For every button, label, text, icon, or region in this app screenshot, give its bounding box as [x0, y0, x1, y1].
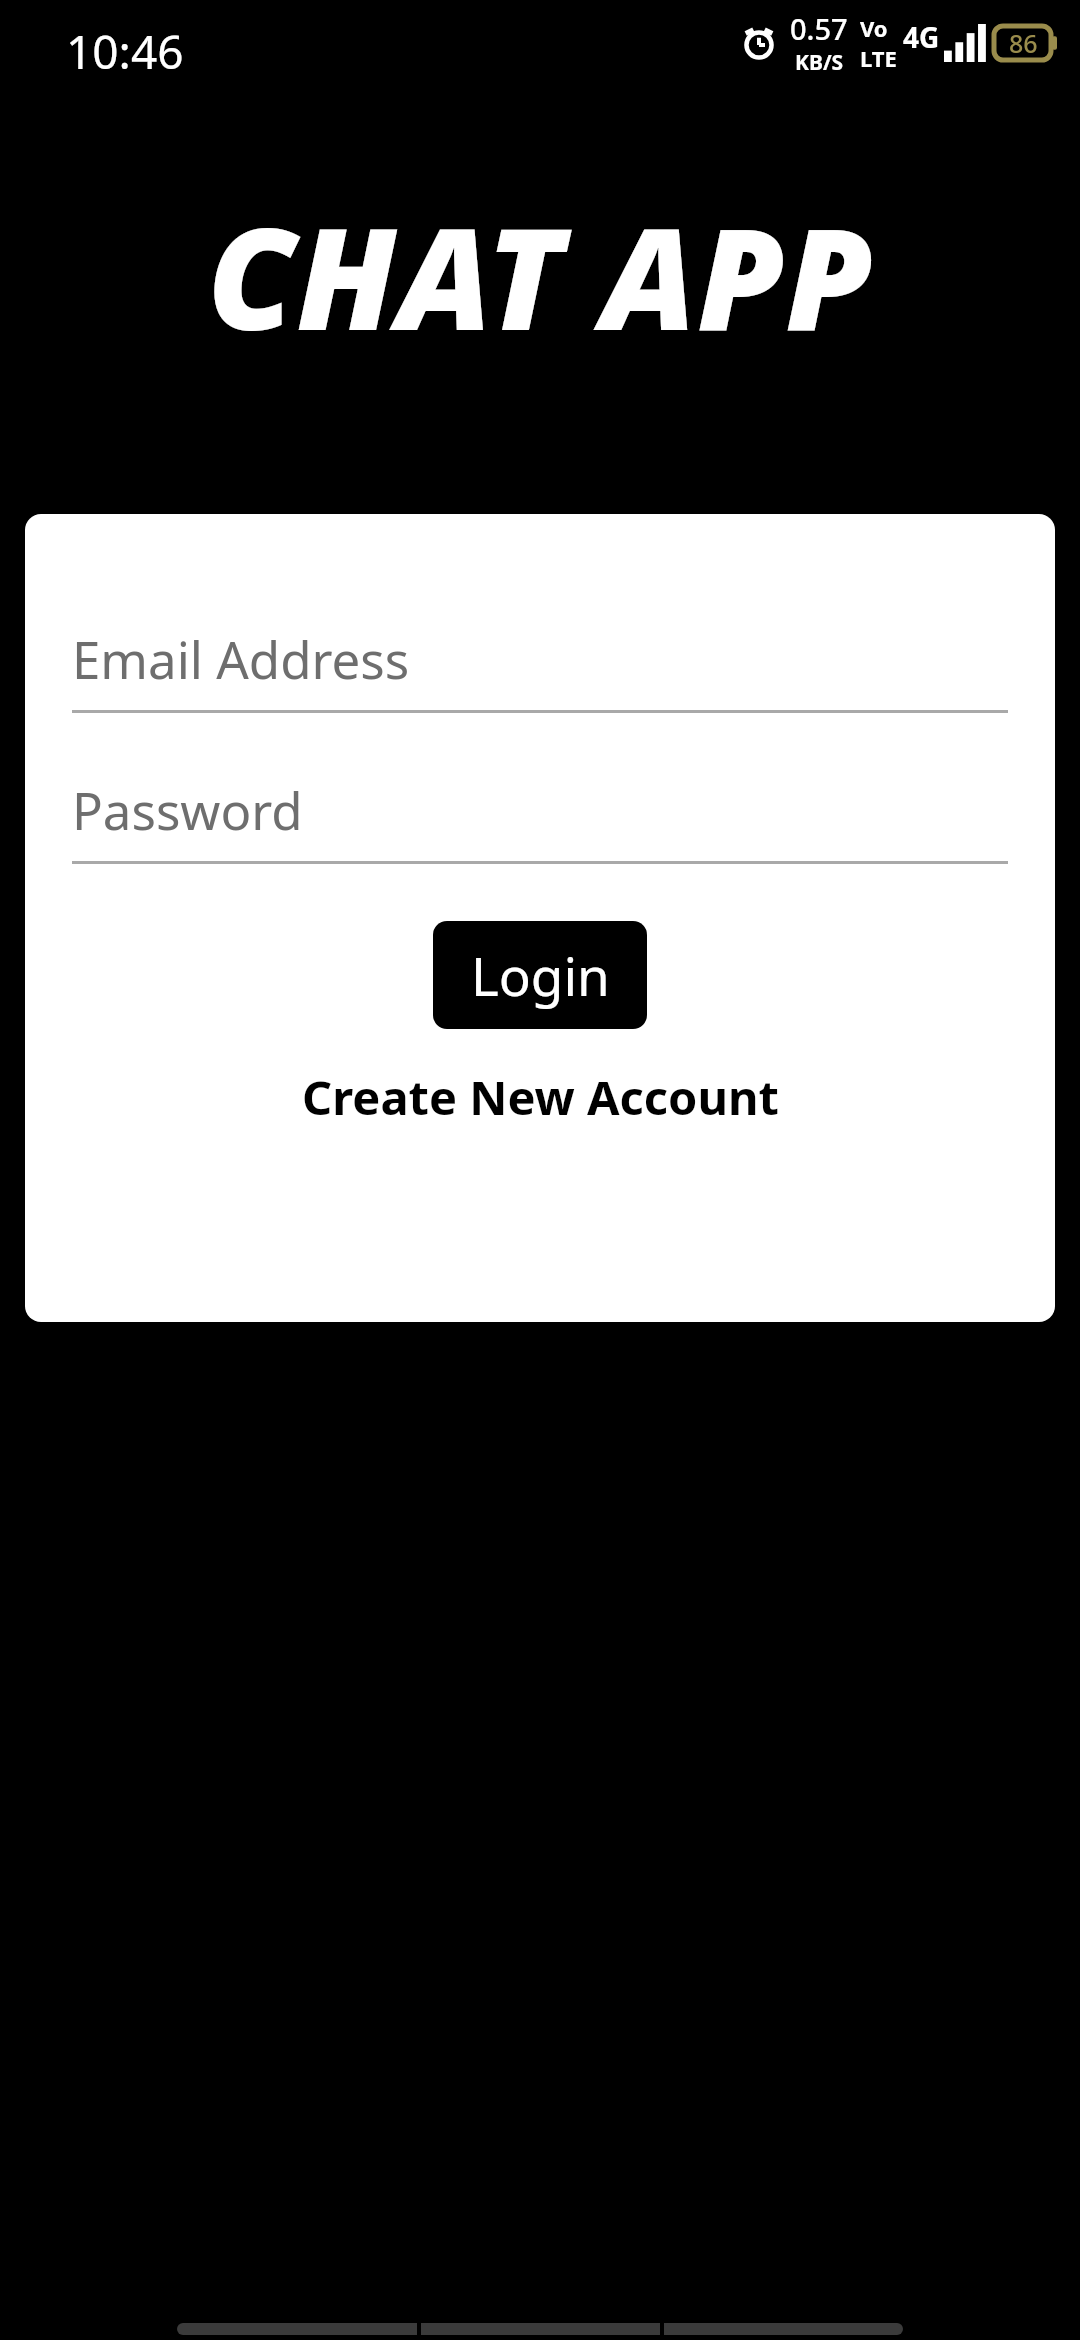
staticText: CHAT APP	[207, 180, 874, 370]
staticText: Create New Account	[302, 1065, 779, 1129]
staticText: 10:46	[66, 20, 184, 83]
button[interactable]: Email Address	[25, 606, 1055, 710]
staticText: 4G	[903, 18, 940, 56]
staticText: Email Address	[72, 624, 410, 693]
button[interactable]: Back	[177, 2323, 417, 2335]
staticText: LTE	[860, 43, 897, 73]
staticText: Login	[471, 939, 610, 1011]
button[interactable]: Password	[25, 757, 1055, 861]
staticText: KB/S	[795, 48, 844, 77]
staticText: Vo	[860, 13, 888, 43]
staticText: Password	[72, 775, 303, 844]
button[interactable]: Create New Account	[25, 1055, 1055, 1139]
button[interactable]: Recents	[664, 2323, 903, 2335]
staticText: 86	[1009, 26, 1038, 60]
staticText: 0.57	[790, 9, 848, 48]
button[interactable]: Login	[433, 921, 647, 1029]
